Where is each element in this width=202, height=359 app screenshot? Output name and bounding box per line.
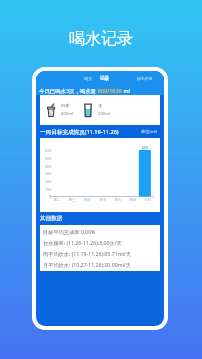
button[interactable]: 周平均饮水: (11.19-11.26):85.71ml/天 (43, 248, 160, 259)
staticText: 记录 (100, 76, 109, 82)
staticText: 周六 (114, 198, 122, 203)
button[interactable]: 奶茶 (47, 103, 74, 117)
staticText: 今日 (144, 198, 152, 203)
button[interactable]: 目标平均完成率:0.00% (43, 226, 160, 237)
staticText: 喝水 (84, 76, 92, 81)
button[interactable]: 饮水频率: (11.26-11.26):3.00次/天 (43, 237, 160, 248)
staticText: 500 (45, 156, 52, 161)
staticText: 缺水评测 (137, 76, 153, 81)
staticText: 奶茶 (61, 103, 70, 108)
staticText: 200 (45, 179, 52, 184)
staticText: 200ml (98, 111, 111, 117)
staticText: 600 (142, 145, 149, 150)
staticText: 周二 (53, 198, 61, 203)
staticText: 600 (45, 148, 52, 153)
staticText: 一周目标完成情况(11.19-11.26) (40, 128, 119, 136)
staticText: 周日 (129, 198, 137, 203)
staticText: 目标平均完成率:0.00% (43, 228, 96, 235)
staticText: 400ml (61, 111, 74, 117)
staticText: 0 (49, 194, 52, 199)
staticText: 周四 (83, 198, 91, 203)
staticText: 周三 (68, 198, 76, 203)
staticText: 饮水频率: (11.26-11.26):3.00次/天 (43, 239, 122, 246)
staticText: ml (122, 87, 130, 94)
staticText: 100 (45, 187, 52, 192)
staticText: 水 (98, 103, 103, 108)
button[interactable]: 喝水 (84, 76, 92, 81)
staticText: 周平均饮水: (11.19-11.26):85.71ml/天 (43, 250, 131, 257)
button[interactable]: 记录 (100, 76, 109, 82)
button[interactable]: 缺水评测 (137, 76, 153, 81)
button[interactable]: 水 (84, 103, 111, 117)
staticText: 单位(ml) (141, 129, 157, 135)
staticText: 月平均饮水: (10.27-11.26):20.00ml/天 (43, 261, 131, 268)
staticText: 400 (45, 164, 52, 169)
staticText: 其他数据 (40, 215, 63, 222)
staticText: 300 (45, 171, 52, 176)
staticText: 喝水记录 (69, 29, 133, 49)
staticText: 今日已喝水3次，喝水量 (39, 87, 98, 94)
staticText: 周五 (99, 198, 107, 203)
button[interactable]: 月平均饮水: (10.27-11.26):20.00ml/天 (43, 259, 160, 270)
staticText: 600/1620 (98, 87, 122, 94)
